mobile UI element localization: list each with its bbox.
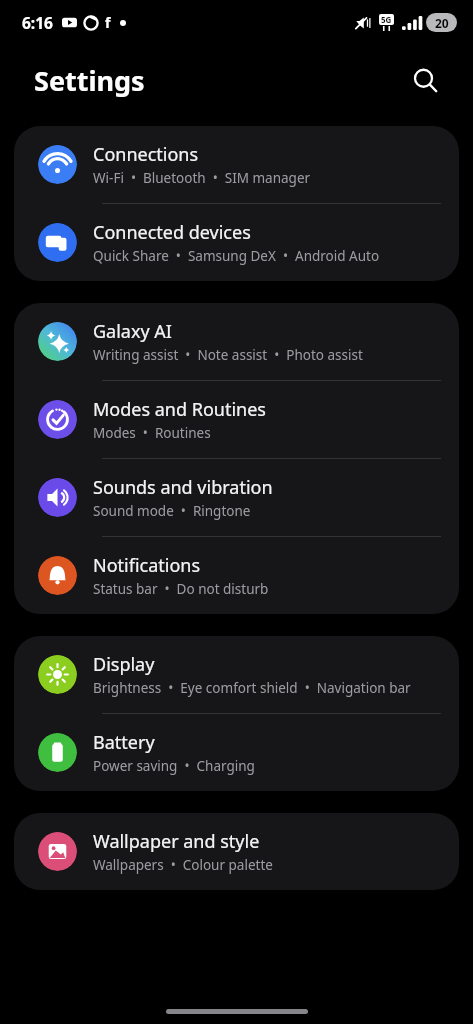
staticText: Notifications xyxy=(93,553,201,578)
staticText: Connections xyxy=(93,142,199,167)
button[interactable]: Display xyxy=(14,636,459,713)
staticText: Modes and Routines xyxy=(93,397,266,422)
staticText: Brightness • Eye comfort shield • Naviga… xyxy=(93,679,411,697)
staticText: Wallpapers • Colour palette xyxy=(93,856,273,874)
button[interactable]: Galaxy AI xyxy=(14,303,459,380)
staticText: Quick Share • Samsung DeX • Android Auto xyxy=(93,247,380,265)
button[interactable]: Connections xyxy=(14,126,459,203)
button[interactable]: Wallpaper and style xyxy=(14,813,459,890)
staticText: 6:16 xyxy=(22,12,53,33)
staticText: Wi-Fi • Bluetooth • SIM manager xyxy=(93,169,311,187)
staticText: Battery xyxy=(93,730,155,755)
staticText: f xyxy=(105,13,111,32)
button[interactable]: Modes and Routines xyxy=(14,381,459,458)
button[interactable]: Sounds and vibration xyxy=(14,459,459,536)
staticText: Connected devices xyxy=(93,220,251,245)
staticText: Display xyxy=(93,652,155,677)
staticText: Galaxy AI xyxy=(93,319,172,344)
staticText: 5G xyxy=(381,14,392,25)
staticText: Wallpaper and style xyxy=(93,829,260,854)
button[interactable]: Search xyxy=(403,58,447,102)
staticText: Power saving • Charging xyxy=(93,757,255,775)
button[interactable]: Connected devices xyxy=(14,204,459,281)
staticText: Settings xyxy=(34,62,145,99)
staticText: 20 xyxy=(435,15,449,31)
staticText: Status bar • Do not disturb xyxy=(93,580,269,598)
button[interactable]: Notifications xyxy=(14,537,459,614)
staticText: Modes • Routines xyxy=(93,424,211,442)
button[interactable]: Battery xyxy=(14,714,459,791)
staticText: Writing assist • Note assist • Photo ass… xyxy=(93,346,363,364)
staticText: Sound mode • Ringtone xyxy=(93,502,251,520)
staticText: Sounds and vibration xyxy=(93,475,273,500)
